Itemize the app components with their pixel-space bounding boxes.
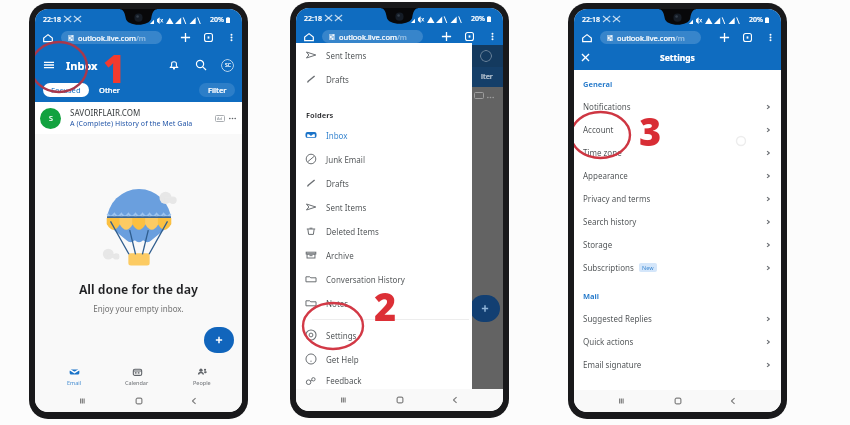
button[interactable]: New tab (719, 32, 730, 43)
button[interactable]: Deleted Items (296, 219, 472, 243)
staticText: General (583, 79, 613, 89)
button[interactable]: Recents (614, 393, 630, 409)
button[interactable]: Feedback (296, 371, 472, 390)
staticText: Storage (583, 239, 613, 250)
button[interactable]: Conversation History (296, 267, 472, 291)
button[interactable]: Notifications (168, 59, 180, 71)
button[interactable]: Notes (296, 291, 472, 315)
button[interactable]: Focused (43, 83, 89, 97)
staticText: 2 (374, 280, 397, 332)
button[interactable]: Account (574, 118, 781, 141)
staticText: 22:18 (304, 14, 322, 24)
button[interactable]: Tabs (742, 32, 753, 43)
staticText: Sent Items (326, 50, 367, 61)
staticText: Conversation History (326, 274, 405, 285)
button[interactable]: Settings (296, 323, 472, 347)
staticText: 3 (639, 105, 662, 157)
button[interactable]: Get Help (296, 347, 472, 371)
staticText: Email signature (583, 359, 642, 370)
button[interactable]: S (35, 102, 242, 134)
button[interactable]: More options (766, 33, 775, 42)
staticText: New (642, 264, 654, 271)
button[interactable]: Close (580, 52, 591, 63)
button[interactable]: More (228, 114, 237, 123)
staticText: Calendar (125, 379, 149, 386)
staticText: 20% (749, 15, 763, 25)
button[interactable]: More options (227, 33, 236, 42)
staticText: Drafts (326, 74, 349, 85)
button[interactable]: Home (670, 393, 686, 409)
button[interactable]: Drafts (296, 67, 472, 91)
staticText: Time zone (583, 147, 622, 158)
staticText: Suggested Replies (583, 313, 652, 324)
staticText: Deleted Items (326, 226, 379, 237)
button[interactable]: Menu (43, 59, 55, 71)
staticText: Notifications (583, 101, 631, 112)
staticText: /m (136, 33, 146, 43)
button[interactable]: New tab (441, 31, 452, 42)
button[interactable]: Filter (199, 83, 235, 97)
staticText: Inbox (66, 58, 98, 73)
button[interactable]: Home (131, 393, 147, 409)
button[interactable]: Notifications (574, 95, 781, 118)
staticText: All done for the day (35, 281, 242, 298)
button[interactable]: Email signature (574, 353, 781, 376)
staticText: outlook.live.com (78, 33, 136, 43)
staticText: Settings (326, 330, 357, 341)
button[interactable]: Inbox (296, 123, 472, 147)
button[interactable]: outlook.live.com (61, 31, 162, 44)
button[interactable]: People (181, 366, 223, 387)
staticText: Appearance (583, 170, 628, 181)
button[interactable]: Junk Email (296, 147, 472, 171)
button[interactable]: Search history (574, 210, 781, 233)
button[interactable]: Sent Items (296, 195, 472, 219)
button[interactable]: More options (488, 32, 497, 41)
button[interactable]: Other (93, 83, 125, 97)
button[interactable]: Home (42, 32, 54, 44)
button[interactable]: Email (55, 366, 94, 387)
button[interactable]: Home (303, 31, 315, 43)
button[interactable]: Account (221, 59, 234, 72)
button[interactable]: Home (581, 32, 593, 44)
staticText: 20% (471, 14, 485, 24)
staticText: 22:18 (43, 15, 61, 25)
staticText: 1 (103, 42, 126, 94)
button[interactable]: Home (392, 392, 408, 408)
button[interactable]: Drafts (296, 171, 472, 195)
staticText: S (49, 114, 53, 124)
button[interactable]: Quick actions (574, 330, 781, 353)
button[interactable]: Back (447, 392, 463, 408)
button[interactable]: Privacy and terms (574, 187, 781, 210)
button[interactable]: Subscriptions (574, 256, 781, 279)
staticText: /m (675, 33, 685, 43)
staticText: Filter (208, 85, 227, 95)
button[interactable]: outlook.live.com (600, 31, 701, 44)
button[interactable]: Recents (336, 392, 352, 408)
button[interactable]: outlook.live.com (322, 30, 423, 43)
button[interactable]: Archive (296, 243, 472, 267)
staticText: Folders (306, 110, 334, 120)
button[interactable]: Storage (574, 233, 781, 256)
staticText: Get Help (326, 354, 359, 365)
button[interactable]: Sent Items (296, 43, 472, 67)
staticText: Junk Email (326, 154, 365, 165)
button[interactable]: Search (195, 59, 207, 71)
button[interactable]: Recents (75, 393, 91, 409)
staticText: outlook.live.com (339, 32, 397, 42)
button[interactable]: New tab (180, 32, 191, 43)
staticText: SC (225, 62, 231, 69)
button[interactable]: Back (186, 393, 202, 409)
button[interactable]: Appearance (574, 164, 781, 187)
button[interactable]: Suggested Replies (574, 307, 781, 330)
button[interactable]: Time zone (574, 141, 781, 164)
staticText: Enjoy your empty inbox. (35, 303, 242, 314)
staticText: lter (481, 71, 493, 81)
staticText: Ad (217, 116, 223, 121)
staticText: Quick actions (583, 336, 634, 347)
button[interactable]: Back (725, 393, 741, 409)
staticText: 20% (210, 15, 224, 25)
button[interactable]: Tabs (203, 32, 214, 43)
button[interactable]: Compose (204, 327, 234, 353)
button[interactable]: Calendar (113, 366, 161, 387)
button[interactable]: Tabs (464, 31, 475, 42)
